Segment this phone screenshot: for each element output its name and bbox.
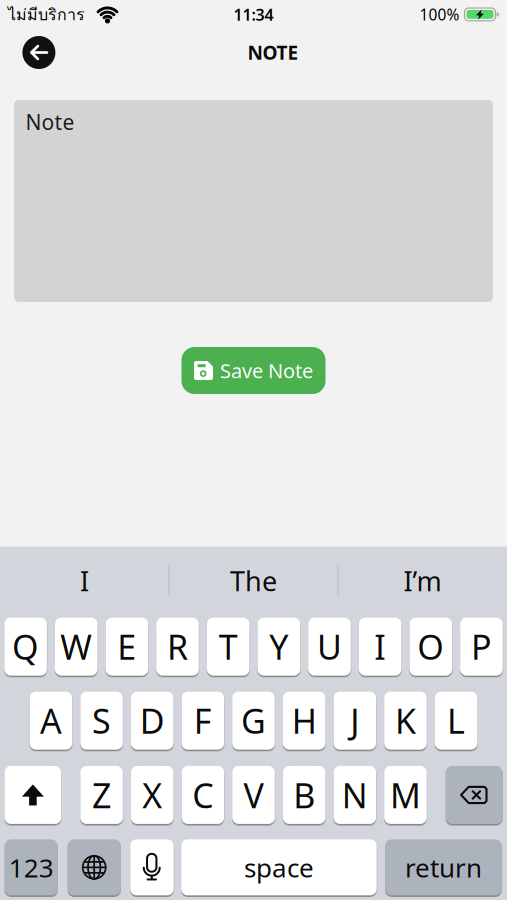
staticText: W [60,624,92,669]
button[interactable]: return [385,839,502,895]
staticText: C [192,772,213,818]
staticText: M [390,772,421,818]
button[interactable]: I [0,547,169,615]
button[interactable]: W [55,618,97,676]
button[interactable]: T [207,618,249,676]
button[interactable]: Delete [446,766,502,824]
button[interactable]: Y [257,618,300,676]
staticText: D [140,698,165,743]
button[interactable]: Dictate [130,839,174,895]
button[interactable]: X [131,766,173,824]
staticText: Y [269,624,288,669]
staticText: I [374,624,386,669]
button[interactable]: The [169,547,338,615]
staticText: return [405,850,482,885]
staticText: S [92,698,111,743]
staticText: E [117,624,136,669]
staticText: O [417,624,444,669]
staticText: T [219,624,238,669]
button[interactable]: Z [80,766,123,824]
button[interactable]: A [30,692,72,750]
button[interactable]: J [333,692,376,750]
staticText: V [243,772,263,818]
staticText: Note [25,108,74,136]
staticText: B [293,772,315,818]
staticText: K [395,698,416,743]
button[interactable]: K [384,692,427,750]
staticText: Z [92,772,111,818]
button[interactable]: D [131,692,173,750]
button[interactable]: O [409,618,452,676]
button[interactable]: C [182,766,224,824]
staticText: F [194,698,212,743]
staticText: J [350,698,359,743]
button[interactable]: R [156,618,199,676]
staticText: G [241,698,266,743]
button[interactable]: Numbers [5,839,58,895]
button[interactable]: Next keyboard [68,839,121,895]
staticText: N [342,772,368,818]
staticText: NOTE [247,40,298,65]
button[interactable]: space [181,839,377,895]
staticText: 123 [9,850,54,885]
staticText: L [447,698,465,743]
staticText: A [40,698,62,743]
button[interactable]: H [283,692,325,750]
button[interactable]: U [308,618,351,676]
button[interactable]: Save Note [181,347,325,394]
staticText: R [167,624,188,669]
button[interactable]: B [283,766,325,824]
button[interactable]: L [435,692,477,750]
staticText: Q [12,624,39,669]
button[interactable]: S [80,692,123,750]
button[interactable]: I [359,618,401,676]
staticText: 11:34 [233,4,273,25]
staticText: 100% [419,4,459,25]
staticText: I [80,563,89,599]
button[interactable]: I’m [338,547,507,615]
button[interactable]: Shift [4,766,61,824]
staticText: H [292,698,317,743]
staticText: The [230,563,277,599]
staticText: space [244,850,314,885]
staticText: ไม่มีบริการ [8,2,85,27]
button[interactable]: M [384,766,427,824]
button[interactable]: F [182,692,224,750]
button[interactable]: V [232,766,275,824]
staticText: X [142,772,162,818]
staticText: I’m [403,563,441,599]
staticText: U [317,624,342,669]
staticText: Save Note [220,357,313,384]
button[interactable]: G [232,692,275,750]
button[interactable]: N [333,766,376,824]
button[interactable]: Q [4,618,47,676]
staticText: P [471,624,492,669]
button[interactable]: P [460,618,503,676]
button[interactable]: E [106,618,148,676]
button[interactable]: Back [22,36,55,69]
